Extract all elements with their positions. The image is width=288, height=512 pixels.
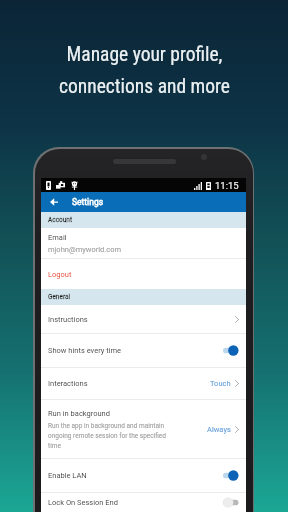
button[interactable]: Show hints every time — [41, 334, 246, 367]
staticText: Interactions — [48, 379, 210, 388]
staticText: Logout — [48, 270, 72, 279]
button[interactable]: Email — [41, 228, 246, 258]
staticText: Email — [48, 233, 67, 242]
button[interactable]: Logout — [41, 259, 246, 289]
staticText: Instructions — [48, 315, 235, 324]
staticText: Settings — [72, 197, 104, 207]
button[interactable]: Back — [45, 192, 62, 212]
staticText: Lock On Session End — [48, 498, 223, 507]
button[interactable]: Run in background — [41, 400, 246, 458]
staticText: Touch — [210, 379, 231, 388]
staticText: Run the app in background and maintain o… — [48, 422, 174, 450]
button[interactable]: Enable LAN — [41, 459, 246, 492]
button[interactable]: Lock On Session End — [41, 493, 246, 512]
staticText: Account — [48, 216, 73, 224]
staticText: Always — [207, 425, 231, 434]
staticText: 11:15 — [215, 180, 239, 191]
button[interactable]: Interactions — [41, 368, 246, 399]
button[interactable]: Instructions — [41, 305, 246, 333]
staticText: Enable LAN — [48, 471, 223, 480]
staticText: Manage your profile, connections and mor… — [59, 43, 230, 97]
staticText: mjohn@myworld.com — [48, 245, 122, 254]
staticText: Run in background — [48, 409, 110, 418]
staticText: Show hints every time — [48, 346, 223, 355]
staticText: General — [48, 293, 71, 301]
